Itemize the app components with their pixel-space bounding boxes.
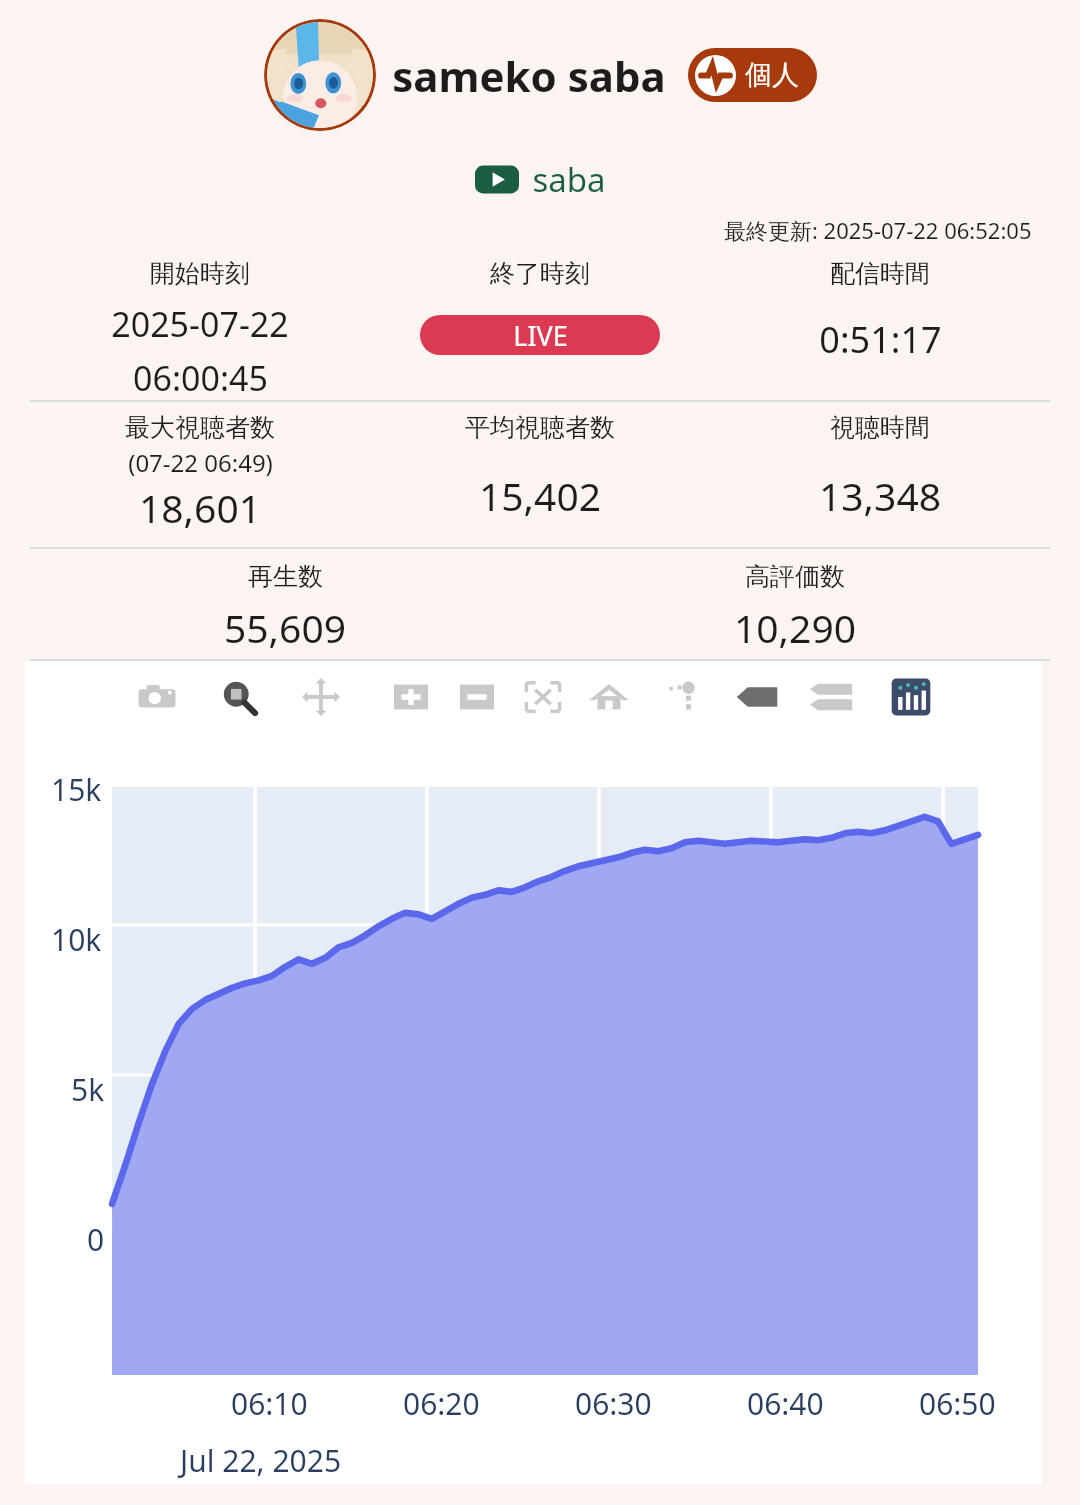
staticText: 再生数 [248,561,323,592]
button[interactable]: Zoom [216,674,262,720]
staticText: 最終更新: 2025-07-22 06:52:05 [724,215,1032,245]
button[interactable]: Reset axes [586,674,632,720]
button[interactable]: Compare data on hover [808,674,854,720]
button[interactable]: Produced with Plotly [888,674,934,720]
button[interactable]: Zoom out [454,674,500,720]
staticText: 5k [71,1069,105,1110]
staticText: 最大視聴者数 [125,412,275,443]
button[interactable]: Toggle spike lines [660,674,706,720]
button[interactable]: Zoom in [388,674,434,720]
button[interactable]: saba [475,157,606,202]
staticText: 2025-07-22 [111,301,289,347]
staticText: 55,609 [224,601,346,654]
staticText: LIVE [513,317,568,354]
staticText: 10k [51,919,102,960]
staticText: 06:00:45 [133,355,268,400]
staticText: 06:20 [403,1383,480,1424]
staticText: 高評価数 [745,561,845,592]
button[interactable]: Pan [298,674,344,720]
staticText: 10,290 [734,601,856,654]
staticText: 06:40 [747,1383,824,1424]
button[interactable]: Show closest data on hover [734,674,780,720]
staticText: 平均視聴者数 [465,412,615,443]
staticText: 06:30 [575,1383,652,1424]
staticText: 06:10 [231,1383,308,1424]
staticText: 0:51:17 [819,315,942,364]
staticText: 0 [87,1219,105,1260]
button[interactable]: 個人 [688,48,817,102]
staticText: 06:50 [919,1383,996,1424]
button[interactable]: Download plot as png [134,674,180,720]
staticText: 13,348 [819,469,941,522]
staticText: 個人 [745,58,799,92]
staticText: 配信時間 [830,258,930,289]
staticText: 終了時刻 [490,258,590,289]
staticText: (07-22 06:49) [128,446,273,479]
staticText: Jul 22, 2025 [180,1440,342,1481]
staticText: saba [532,157,606,202]
staticText: 15,402 [479,469,601,522]
staticText: sameko saba [392,47,666,104]
staticText: 18,601 [139,481,261,534]
button[interactable]: Channel avatar [264,19,376,131]
button[interactable]: LIVE [420,315,660,355]
staticText: 開始時刻 [150,258,250,289]
staticText: 15k [51,769,102,810]
staticText: 視聴時間 [830,412,930,443]
button[interactable]: Autoscale [520,674,566,720]
